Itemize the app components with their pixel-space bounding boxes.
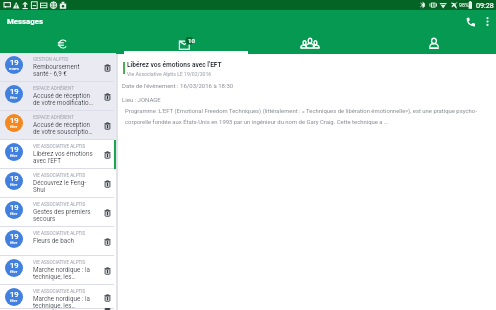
staticText: 19	[10, 58, 19, 67]
staticText: VIE ASSOCIATIVE ALPTIS	[33, 289, 86, 294]
staticText: Accusé de réception de votre modificatio…	[33, 92, 93, 106]
staticText: Remboursement santé - 6,9 €	[33, 63, 93, 77]
staticText: 19	[10, 145, 19, 154]
staticText: Fleurs de bach	[33, 237, 74, 244]
button[interactable]: Delete	[101, 264, 114, 277]
staticText: 19	[10, 261, 19, 270]
button[interactable]: 19	[0, 53, 116, 82]
button[interactable]: 19	[0, 285, 116, 309]
staticText: VIE ASSOCIATIVE ALPTIS	[33, 202, 86, 207]
button[interactable]: Delete	[101, 90, 114, 103]
button[interactable]: Messages	[124, 31, 248, 54]
staticText: 19	[10, 290, 19, 299]
button[interactable]: Community	[248, 31, 372, 54]
button[interactable]: 19	[0, 111, 116, 140]
staticText: 19	[10, 232, 19, 241]
staticText: VIE ASSOCIATIVE ALPTIS	[33, 173, 86, 178]
button[interactable]: 19	[0, 140, 116, 169]
button[interactable]: Delete	[101, 206, 114, 219]
staticText: Libérez vos émotions avec l'EFT	[33, 150, 93, 164]
staticText: Accusé de réception de votre souscriptio…	[33, 121, 93, 135]
button[interactable]: 19	[0, 169, 116, 198]
staticText: Lieu : JONAGE	[122, 96, 161, 103]
staticText: Marche nordique : la technique, les…	[33, 295, 93, 309]
staticText: Découvrez le Feng-Shui	[33, 179, 93, 193]
button[interactable]: Delete	[101, 291, 114, 304]
button[interactable]: 19	[0, 82, 116, 111]
staticText: Date de l'évènement : 16/03/2016 à 18:30	[122, 82, 234, 89]
button[interactable]: More options	[479, 13, 495, 29]
button[interactable]: Payments	[0, 31, 124, 54]
button[interactable]: Delete	[101, 235, 114, 248]
staticText: 19	[10, 87, 19, 96]
staticText: 98%	[459, 2, 469, 8]
staticText: 09:28	[476, 1, 494, 9]
staticText: 19	[10, 116, 19, 125]
staticText: Libérez vos émotions avec l'EFT	[127, 61, 222, 69]
staticText: 19	[10, 174, 19, 183]
button[interactable]: Delete	[101, 119, 114, 132]
staticText: Messages	[7, 17, 43, 26]
staticText: févr	[10, 240, 18, 245]
button[interactable]: Call	[462, 13, 479, 30]
staticText: févr	[10, 153, 18, 158]
button[interactable]: Delete	[101, 61, 114, 74]
staticText: Marche nordique : la technique, les…	[33, 266, 93, 280]
button[interactable]: 19	[0, 256, 116, 285]
button[interactable]: Profile	[372, 31, 496, 54]
staticText: mars	[9, 66, 19, 71]
button[interactable]: 19	[0, 227, 116, 256]
button[interactable]: 19	[0, 198, 116, 227]
staticText: 10	[188, 37, 195, 44]
button[interactable]: Delete	[101, 177, 114, 190]
staticText: VIE ASSOCIATIVE ALPTIS	[33, 231, 86, 236]
button[interactable]: Delete	[101, 148, 114, 161]
staticText: Gestes des premiers secours	[33, 208, 93, 222]
staticText: févr	[10, 298, 18, 303]
staticText: ESPACE ADHÉRENT	[33, 86, 74, 91]
staticText: févr	[10, 124, 18, 129]
staticText: Vie Associative Alptis LE 19/02/2016	[127, 71, 212, 77]
staticText: févr	[10, 95, 18, 100]
staticText: févr	[10, 269, 18, 274]
staticText: GESTION ALPTIS	[33, 57, 69, 62]
staticText: VIE ASSOCIATIVE ALPTIS	[33, 260, 86, 265]
staticText: 19	[10, 203, 19, 212]
staticText: VIE ASSOCIATIVE ALPTIS	[33, 144, 86, 149]
staticText: ESPACE ADHÉRENT	[33, 115, 74, 120]
staticText: févr	[10, 211, 18, 216]
staticText: Programme :L'EFT (Emotional Freedom Tech…	[125, 108, 481, 125]
staticText: févr	[10, 182, 18, 187]
